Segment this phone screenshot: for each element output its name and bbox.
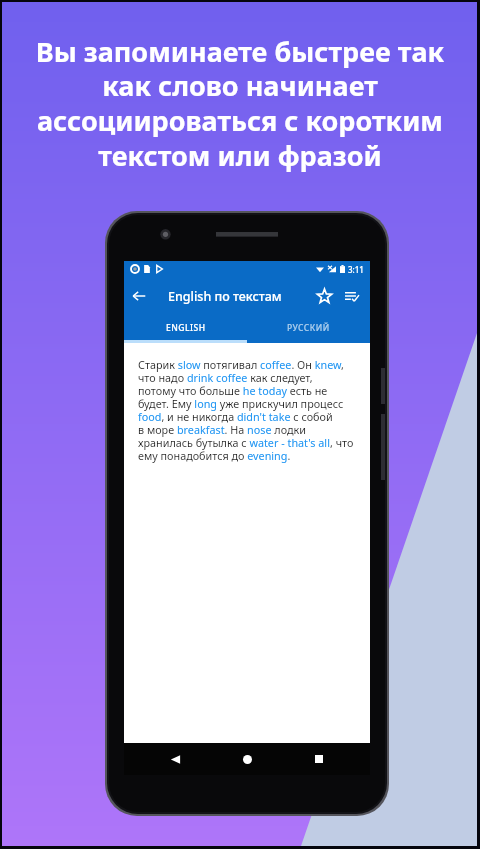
button[interactable]: Recent apps [283, 743, 355, 775]
button[interactable]: Favorite [310, 277, 338, 315]
button[interactable]: Home [211, 743, 283, 775]
staticText: 3:11 [348, 264, 364, 275]
staticText: ENGLISH [166, 322, 206, 334]
staticText: Старик slow потягивал coffee. Он knew, ч… [138, 357, 354, 463]
staticText: English по текстам [168, 288, 282, 305]
staticText: Вы запоминаете быстрее так как слово нач… [12, 33, 468, 174]
staticText: РУССКИЙ [287, 322, 330, 334]
button[interactable]: Playlist [338, 277, 366, 315]
button[interactable]: ENGLISH [124, 315, 247, 340]
button[interactable]: РУССКИЙ [247, 315, 370, 340]
button[interactable]: Back [139, 743, 211, 775]
button[interactable]: Back [124, 277, 154, 315]
